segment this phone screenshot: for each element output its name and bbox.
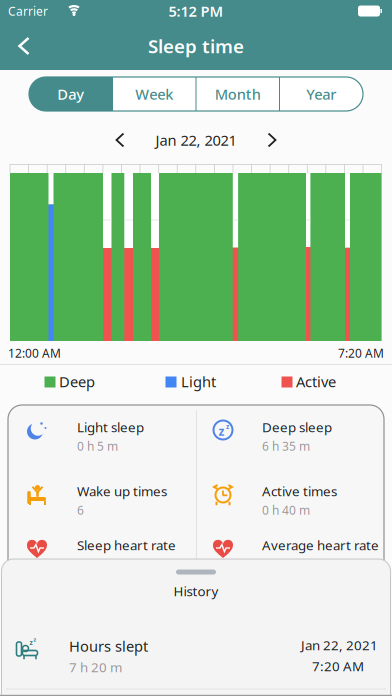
staticText: Jan 22, 2021 — [155, 130, 236, 150]
button[interactable] — [2, 24, 46, 68]
staticText: History — [173, 582, 218, 600]
staticText: 12:00 AM — [8, 345, 61, 361]
staticText: 6 — [77, 502, 84, 518]
staticText: z — [33, 636, 36, 643]
staticText: z — [218, 423, 224, 439]
staticText: 5:12 PM — [168, 1, 223, 21]
staticText: Sleep heart rate — [77, 536, 176, 554]
button[interactable]: Month — [196, 77, 279, 111]
staticText: Average heart rate — [262, 536, 379, 554]
button[interactable]: Day — [29, 77, 112, 111]
staticText: Sleep time — [148, 34, 244, 58]
button[interactable]: History — [0, 559, 392, 603]
staticText: Year — [306, 84, 336, 104]
staticText: Deep — [59, 372, 95, 391]
staticText: Light sleep — [77, 418, 144, 436]
button[interactable] — [254, 122, 290, 158]
staticText: 7:20 AM — [338, 345, 384, 361]
staticText: 6 h 35 m — [262, 438, 310, 454]
staticText: 7 h 20 m — [69, 658, 122, 676]
staticText: Light — [181, 372, 216, 391]
staticText: 0 h 5 m — [77, 438, 118, 454]
staticText: Week — [135, 84, 173, 104]
staticText: 0 h 40 m — [262, 502, 310, 518]
staticText: Day — [57, 84, 84, 104]
button[interactable]: Year — [279, 77, 363, 111]
staticText: Deep sleep — [262, 418, 332, 436]
staticText: Wake up times — [77, 482, 167, 500]
staticText: Hours slept — [69, 636, 148, 656]
button[interactable]: Week — [112, 77, 196, 111]
staticText: Jan 22, 2021 — [301, 636, 378, 654]
staticText: Active — [296, 372, 336, 391]
staticText: 7:20 AM — [312, 657, 364, 675]
staticText: Month — [215, 84, 261, 104]
staticText: z — [226, 422, 229, 431]
button[interactable]: z — [0, 617, 392, 681]
button[interactable] — [102, 122, 138, 158]
staticText: Carrier — [8, 3, 48, 19]
staticText: z — [29, 638, 32, 647]
staticText: Active times — [262, 482, 337, 500]
